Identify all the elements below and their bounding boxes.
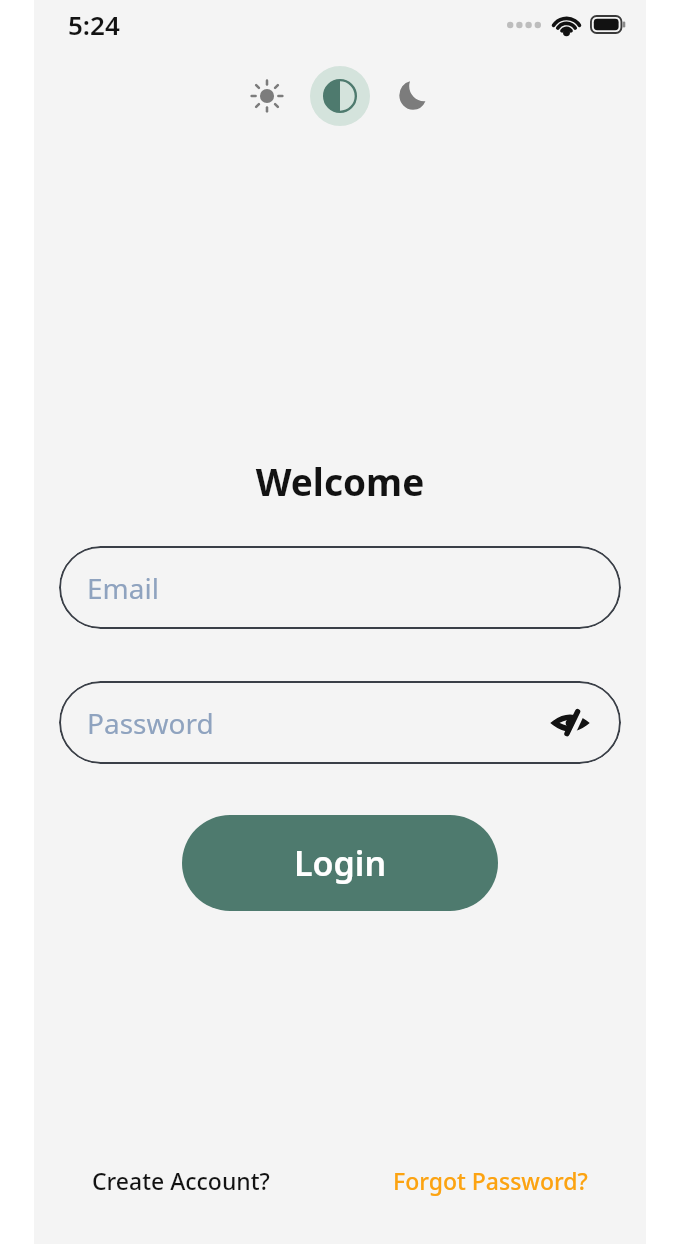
button[interactable]: Login	[182, 815, 498, 911]
button[interactable]: Password	[59, 681, 621, 764]
button[interactable]: Light theme	[238, 67, 296, 125]
staticText: Forgot Password?	[393, 1165, 588, 1196]
button[interactable]: Auto theme	[310, 66, 370, 126]
staticText: Login	[294, 840, 387, 886]
staticText: 5:24	[68, 7, 120, 42]
button[interactable]: Forgot Password?	[391, 1159, 590, 1202]
button[interactable]: Email	[59, 546, 621, 629]
staticText: Email	[87, 569, 159, 607]
button[interactable]: Dark theme	[384, 67, 442, 125]
button[interactable]: Show password	[547, 700, 593, 746]
staticText: Password	[87, 704, 214, 742]
staticText: Welcome	[34, 456, 646, 506]
button[interactable]: Create Account?	[90, 1159, 272, 1202]
staticText: Create Account?	[92, 1165, 270, 1196]
